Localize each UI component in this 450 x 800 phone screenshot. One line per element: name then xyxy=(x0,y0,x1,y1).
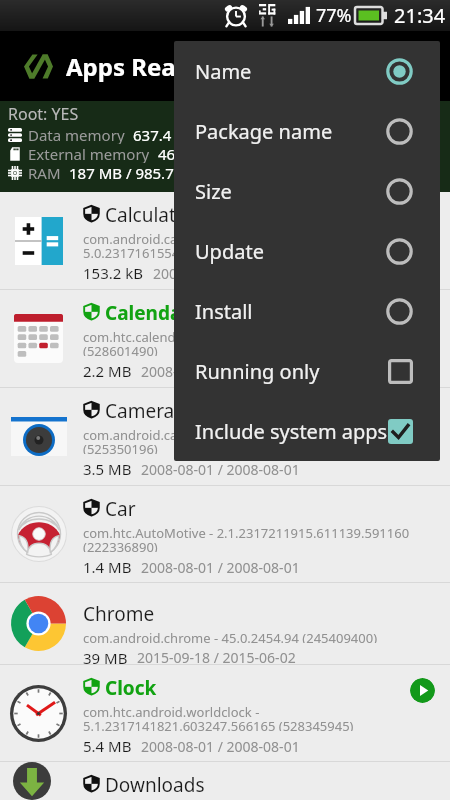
staticText: com.android.chrome - 45.0.2454.94 (24540… xyxy=(83,629,378,643)
staticText: 2008-08-01 / 2008-08-01 xyxy=(141,558,300,577)
staticText: (525350196) xyxy=(83,440,158,454)
staticText: Calculator xyxy=(105,202,196,224)
staticText: (528601490) xyxy=(83,342,158,356)
staticText: 1.4 MB xyxy=(83,557,132,577)
staticText: Install xyxy=(195,298,253,325)
staticText: 2008-08-01 / 2008-08-01 xyxy=(153,264,312,283)
staticText: 5.1.2317141821.603247.566165 (528345945) xyxy=(83,717,354,731)
button[interactable]: Size xyxy=(174,161,440,221)
staticText: Name xyxy=(195,58,252,85)
staticText: 39 MB xyxy=(83,648,128,664)
staticText: Chrome xyxy=(83,601,155,623)
staticText: RAM xyxy=(28,163,61,182)
staticText: Include system apps xyxy=(195,418,388,445)
staticText: Car xyxy=(105,496,136,518)
staticText: Camera xyxy=(105,398,175,420)
button[interactable]: Calculator xyxy=(0,192,450,289)
button[interactable]: Clock xyxy=(0,665,450,761)
staticText: Calendar xyxy=(105,300,190,322)
staticText: 637.4 MB / 2.1 GB xyxy=(133,125,258,144)
button[interactable]: Calendar xyxy=(0,290,450,387)
staticText: com.htc.android.worldclock - xyxy=(83,703,260,717)
button[interactable]: Update xyxy=(174,221,440,281)
staticText: 2008-08-01 / 2008-08-01 xyxy=(141,362,300,381)
staticText: 2008-08-01 / 2008-08-01 xyxy=(141,737,300,756)
staticText: com.android.calculator2 - xyxy=(83,230,239,244)
staticText: Size xyxy=(195,178,232,205)
staticText: External memory xyxy=(28,144,150,163)
staticText: 3.5 MB xyxy=(83,459,132,479)
staticText: 21:34 xyxy=(394,2,446,29)
staticText: Update xyxy=(195,238,264,265)
staticText: com.android.camera - 5.02317161554 xyxy=(83,426,313,440)
button[interactable]: Chrome xyxy=(0,583,450,664)
button[interactable]: Package name xyxy=(174,101,440,161)
staticText: 187 MB / 985.7 MB xyxy=(69,163,201,182)
button[interactable]: Downloads xyxy=(0,762,450,800)
staticText: Data memory xyxy=(28,125,125,144)
staticText: Apps Reader xyxy=(66,50,216,83)
staticText: 2.2 MB xyxy=(83,361,132,381)
staticText: 5.4 MB xyxy=(83,736,132,756)
staticText: 77% xyxy=(316,3,352,28)
staticText: 2008-08-01 / 2008-08-01 xyxy=(141,460,300,479)
staticText: 2015-09-18 / 2015-06-02 xyxy=(137,648,296,664)
button[interactable]: Include system apps xyxy=(174,401,440,461)
button[interactable]: Install xyxy=(174,281,440,341)
staticText: Running only xyxy=(195,358,320,385)
button[interactable]: Launch xyxy=(410,678,435,703)
staticText: com.htc.calendar - 6.00.762881 xyxy=(83,328,273,342)
staticText: 153.2 kB xyxy=(83,263,144,283)
staticText: 46 GB / 59 GB xyxy=(158,144,255,163)
staticText: Package name xyxy=(195,118,333,145)
staticText: Downloads xyxy=(105,772,205,794)
staticText: 5.0.2317161554.603247 (500051) xyxy=(83,244,284,258)
button[interactable]: Camera xyxy=(0,388,450,485)
staticText: Root: YES xyxy=(8,103,79,125)
button[interactable]: Running only xyxy=(174,341,440,401)
staticText: com.htc.AutoMotive - 2.1.2317211915.6111… xyxy=(83,524,410,538)
staticText: (222336890) xyxy=(83,538,158,552)
staticText: Clock xyxy=(105,675,157,697)
button[interactable]: Car xyxy=(0,486,450,582)
button[interactable]: Name xyxy=(174,41,440,101)
